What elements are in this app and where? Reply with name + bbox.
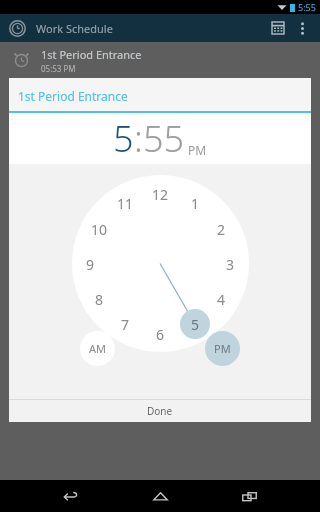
button[interactable]: Calendar — [267, 17, 289, 39]
button[interactable]: 2 — [208, 219, 234, 239]
button[interactable]: 8 — [86, 289, 112, 309]
button[interactable]: PM — [205, 331, 240, 366]
staticText: 1st Period Entrance — [41, 47, 142, 62]
staticText: 11 — [117, 194, 134, 213]
staticText: 3 — [226, 255, 235, 274]
staticText: 8 — [95, 290, 104, 309]
staticText: 7 — [121, 315, 130, 334]
button[interactable]: 11 — [112, 193, 138, 213]
button[interactable]: 4 — [208, 289, 234, 309]
staticText: 1 — [191, 194, 200, 213]
button[interactable]: Done — [9, 399, 311, 422]
button[interactable]: 7 — [112, 314, 138, 334]
staticText: 05:53 PM — [41, 63, 76, 74]
button[interactable]: 10 — [86, 219, 112, 239]
button[interactable]: Home — [142, 480, 178, 512]
staticText: 5 — [113, 114, 134, 163]
button[interactable]: 5 — [113, 114, 134, 163]
staticText: Done — [147, 404, 173, 418]
button[interactable]: 3 — [217, 254, 243, 274]
button[interactable]: Back — [53, 480, 89, 512]
staticText: 4 — [217, 290, 226, 309]
staticText: AM — [89, 341, 107, 356]
button[interactable]: More options — [291, 17, 313, 39]
button[interactable]: 1 — [182, 193, 208, 213]
staticText: 10 — [91, 220, 108, 239]
staticText: 55 — [143, 114, 185, 163]
button[interactable]: 12 — [147, 184, 173, 204]
button[interactable]: 55 — [143, 114, 185, 163]
staticText: 6 — [156, 325, 165, 344]
staticText: Work Schedule — [36, 21, 113, 36]
staticText: PM — [214, 341, 231, 356]
button[interactable]: Recent apps — [231, 480, 267, 512]
staticText: 12 — [152, 185, 169, 204]
staticText: 1st Period Entrance — [18, 88, 128, 104]
button[interactable]: AM — [80, 331, 115, 366]
staticText: : — [134, 114, 143, 163]
staticText: PM — [188, 142, 207, 158]
staticText: 5 — [191, 315, 200, 334]
staticText: 2 — [217, 220, 226, 239]
staticText: 9 — [86, 255, 95, 274]
button[interactable]: 5 — [182, 314, 208, 334]
button[interactable]: 9 — [77, 254, 103, 274]
button[interactable]: 1st Period Entrance — [0, 42, 320, 78]
staticText: 5:55 — [298, 1, 316, 13]
button[interactable]: 6 — [147, 324, 173, 344]
button[interactable]: Work Schedule app icon — [7, 18, 27, 38]
button[interactable]: PM — [188, 142, 207, 158]
